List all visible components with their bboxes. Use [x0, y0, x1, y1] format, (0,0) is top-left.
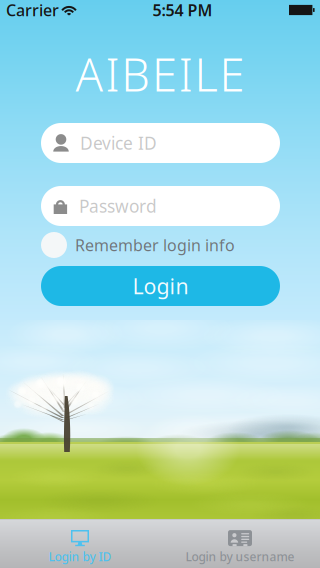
staticText: AIBEILE — [76, 44, 244, 104]
button[interactable]: Remember login info — [41, 232, 281, 258]
staticText: Device ID — [80, 131, 157, 154]
staticText: Carrier — [6, 0, 59, 21]
staticText: Login by username — [185, 549, 294, 565]
staticText: Login by ID — [48, 549, 111, 565]
button[interactable]: Login by username — [160, 519, 320, 568]
button[interactable]: Login — [41, 266, 280, 306]
staticText: Login — [132, 272, 188, 300]
staticText: Remember login info — [75, 234, 235, 256]
staticText: 5:54 PM — [152, 0, 212, 21]
button[interactable]: Login by ID — [0, 519, 160, 568]
staticText: Password — [79, 194, 157, 217]
